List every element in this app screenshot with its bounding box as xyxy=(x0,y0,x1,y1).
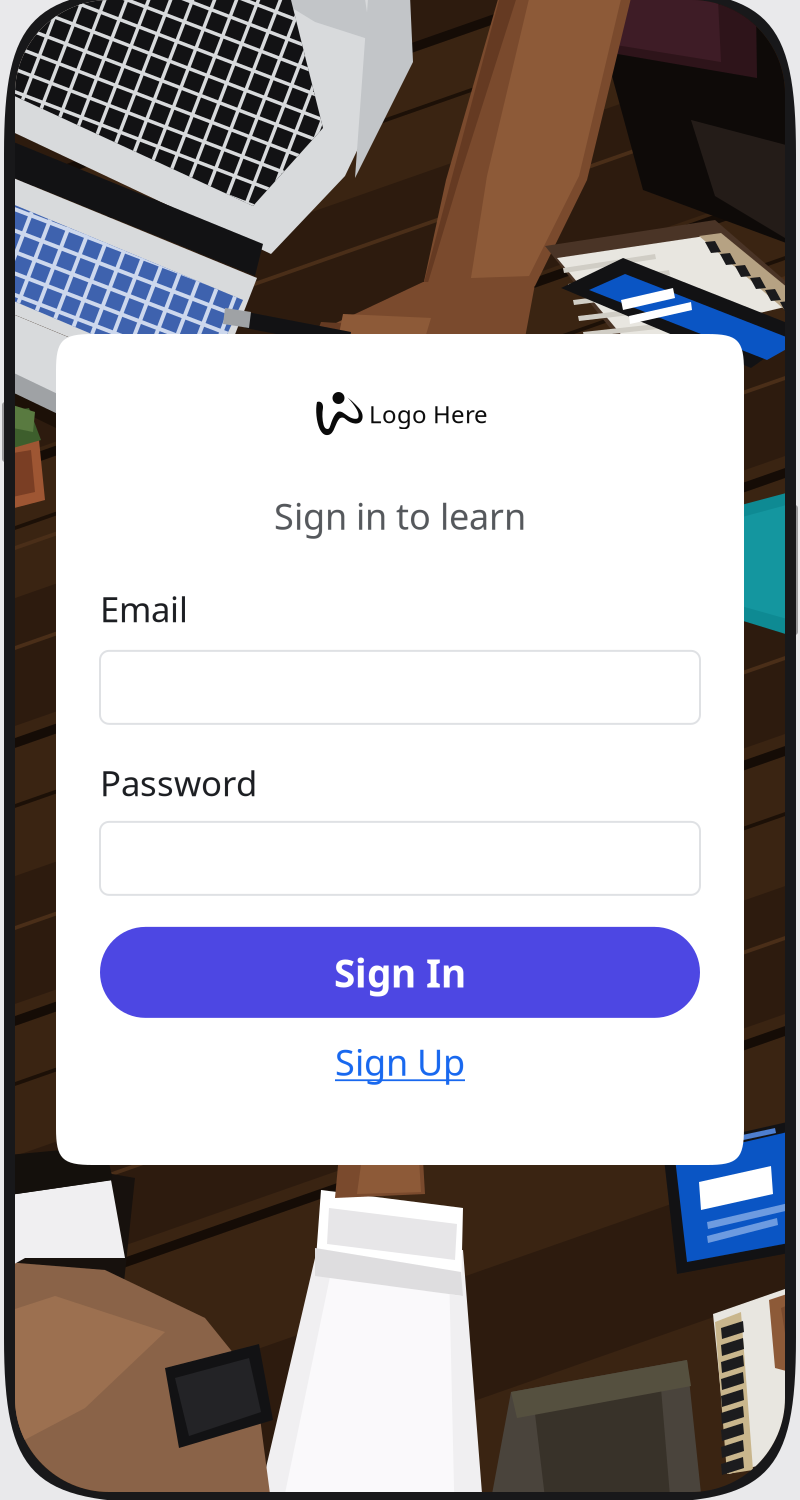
staticText: Sign In xyxy=(334,947,466,998)
button[interactable]: Sign In xyxy=(100,927,700,1018)
staticText: Email xyxy=(100,586,188,632)
button[interactable]: Sign Up xyxy=(335,1038,465,1086)
staticText: Logo Here xyxy=(369,398,488,430)
staticText: Password xyxy=(100,760,257,806)
staticText: Sign Up xyxy=(335,1038,465,1086)
staticText: Sign in to learn xyxy=(274,492,526,540)
